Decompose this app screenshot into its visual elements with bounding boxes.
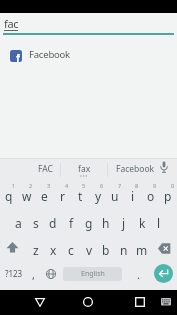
staticText: ?123 bbox=[5, 268, 23, 279]
button[interactable]: f bbox=[62, 207, 80, 234]
button[interactable]: . bbox=[131, 263, 145, 286]
button[interactable]: c bbox=[62, 234, 80, 262]
staticText: 8 bbox=[135, 182, 139, 189]
staticText: r bbox=[60, 188, 65, 204]
button[interactable]: g bbox=[80, 207, 98, 234]
staticText: 4 bbox=[65, 182, 69, 189]
staticText: u bbox=[111, 188, 119, 204]
button[interactable]: ?123 bbox=[3, 263, 25, 284]
staticText: Facebook bbox=[29, 48, 70, 61]
staticText: i bbox=[131, 188, 135, 204]
staticText: 5 bbox=[82, 182, 86, 189]
button[interactable] bbox=[25, 290, 55, 315]
staticText: v bbox=[86, 242, 93, 258]
staticText: o bbox=[147, 188, 155, 204]
button[interactable]: r bbox=[53, 180, 71, 207]
staticText: d bbox=[49, 215, 57, 231]
staticText: c bbox=[68, 242, 74, 258]
button[interactable]: , bbox=[26, 263, 40, 286]
button[interactable]: fax bbox=[69, 159, 99, 179]
staticText: , bbox=[32, 267, 35, 282]
button[interactable]: a bbox=[9, 207, 27, 234]
button[interactable]: w bbox=[18, 180, 36, 207]
button[interactable]: o bbox=[142, 180, 160, 207]
staticText: z bbox=[33, 242, 39, 258]
staticText: k bbox=[139, 215, 146, 231]
staticText: t bbox=[78, 188, 83, 204]
button[interactable] bbox=[0, 234, 27, 262]
staticText: j bbox=[122, 215, 126, 231]
button[interactable] bbox=[154, 264, 173, 283]
staticText: w bbox=[22, 188, 32, 204]
staticText: fac bbox=[4, 16, 19, 31]
staticText: . bbox=[137, 267, 140, 282]
staticText: 2 bbox=[29, 182, 33, 189]
button[interactable]: f bbox=[0, 42, 177, 66]
staticText: FAC bbox=[38, 163, 53, 175]
staticText: Facebook bbox=[116, 163, 155, 175]
staticText: n bbox=[120, 242, 128, 258]
button[interactable]: b bbox=[97, 234, 115, 262]
button[interactable]: d bbox=[44, 207, 62, 234]
staticText: m bbox=[136, 242, 148, 258]
staticText: 6 bbox=[100, 182, 104, 189]
staticText: fax bbox=[78, 163, 91, 175]
staticText: f bbox=[69, 215, 74, 231]
button[interactable]: t bbox=[71, 180, 89, 207]
button[interactable]: x bbox=[44, 234, 62, 262]
staticText: g bbox=[85, 215, 93, 231]
button[interactable] bbox=[156, 292, 176, 312]
staticText: p bbox=[164, 188, 172, 204]
staticText: x bbox=[50, 242, 57, 258]
staticText: y bbox=[95, 188, 102, 204]
button[interactable] bbox=[73, 290, 103, 315]
staticText: a bbox=[15, 215, 22, 231]
staticText: q bbox=[5, 188, 13, 204]
button[interactable]: p bbox=[159, 180, 177, 207]
button[interactable]: s bbox=[27, 207, 45, 234]
button[interactable]: e bbox=[35, 180, 53, 207]
button[interactable]: i bbox=[124, 180, 142, 207]
staticText: 3 bbox=[47, 182, 51, 189]
button[interactable] bbox=[151, 234, 177, 262]
button[interactable]: u bbox=[106, 180, 124, 207]
button[interactable]: k bbox=[133, 207, 151, 234]
button[interactable]: m bbox=[133, 234, 151, 262]
staticText: s bbox=[33, 215, 39, 231]
button[interactable]: j bbox=[115, 207, 133, 234]
button[interactable]: v bbox=[80, 234, 98, 262]
button[interactable]: z bbox=[27, 234, 45, 262]
staticText: 9 bbox=[153, 182, 157, 189]
staticText: l bbox=[157, 215, 161, 231]
staticText: h bbox=[102, 215, 110, 231]
button[interactable]: Facebook bbox=[105, 159, 165, 179]
staticText: b bbox=[102, 242, 110, 258]
button[interactable] bbox=[156, 159, 174, 179]
staticText: e bbox=[41, 188, 48, 204]
staticText: f bbox=[16, 51, 20, 62]
staticText: English bbox=[81, 269, 105, 279]
staticText: 1 bbox=[12, 182, 16, 189]
button[interactable]: l bbox=[150, 207, 168, 234]
button[interactable] bbox=[42, 263, 60, 284]
button[interactable]: h bbox=[97, 207, 115, 234]
button[interactable]: FAC bbox=[30, 159, 60, 179]
button[interactable]: y bbox=[89, 180, 107, 207]
button[interactable] bbox=[125, 290, 155, 315]
button[interactable]: q bbox=[0, 180, 18, 207]
staticText: 0 bbox=[171, 182, 175, 189]
staticText: 7 bbox=[118, 182, 122, 189]
button[interactable]: English bbox=[63, 267, 122, 281]
button[interactable]: n bbox=[115, 234, 133, 262]
